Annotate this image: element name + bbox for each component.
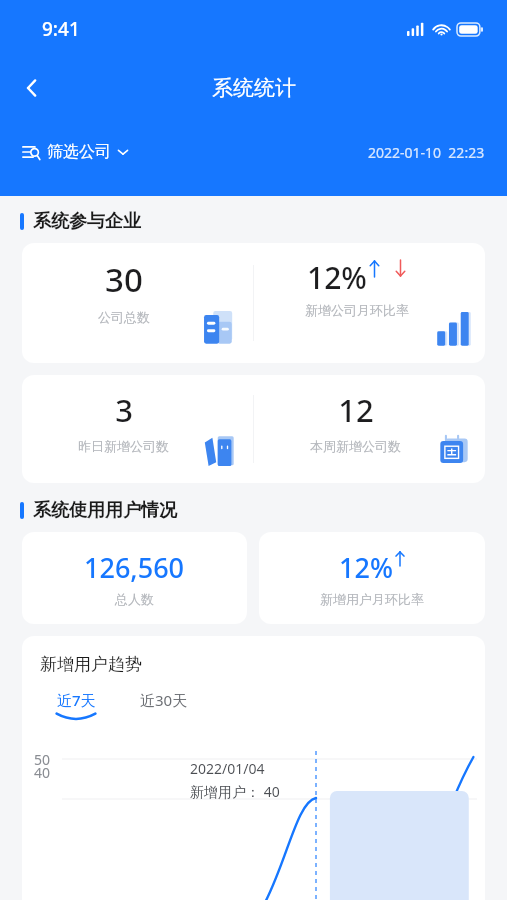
staticText: 12 [338, 389, 374, 431]
staticText: 筛选公司 [47, 142, 111, 162]
staticText: 系统统计 [212, 75, 296, 101]
button[interactable]: 3 [22, 375, 485, 483]
button[interactable]: 30 [22, 243, 485, 363]
staticText: 新增公司月环比率 [305, 302, 409, 318]
staticText: 30 [105, 257, 143, 302]
button[interactable]: 12% [259, 532, 485, 624]
staticText: 公司总数 [98, 309, 150, 325]
staticText: 126,560 [84, 549, 185, 586]
staticText: 近7天 [57, 690, 96, 710]
staticText: 2022/01/04 [190, 759, 265, 778]
staticText: 新增用户： 40 [190, 782, 280, 801]
staticText: 系统参与企业 [33, 210, 141, 233]
button[interactable]: 近30天 [138, 689, 190, 723]
staticText: 新增用户趋势 [40, 654, 142, 675]
staticText: 3 [115, 389, 133, 431]
staticText: 昨日新增公司数 [78, 438, 169, 454]
button[interactable]: 筛选公司 [22, 138, 129, 166]
button[interactable]: 近7天 [52, 689, 100, 723]
staticText: 总人数 [115, 591, 154, 607]
staticText: 40 [34, 763, 51, 782]
staticText: 2022-01-10 22:23 [368, 143, 485, 162]
staticText: 本周新增公司数 [310, 438, 401, 454]
staticText: 近30天 [140, 690, 188, 710]
staticText: 12% [307, 257, 367, 298]
staticText: 9:41 [42, 16, 80, 42]
staticText: 新增用户月环比率 [320, 591, 424, 607]
staticText: 50 [34, 750, 51, 769]
button[interactable]: 126,560 [22, 532, 247, 624]
staticText: 12% [339, 549, 393, 586]
button[interactable]: Back [10, 66, 54, 110]
staticText: 系统使用用户情况 [33, 499, 177, 522]
